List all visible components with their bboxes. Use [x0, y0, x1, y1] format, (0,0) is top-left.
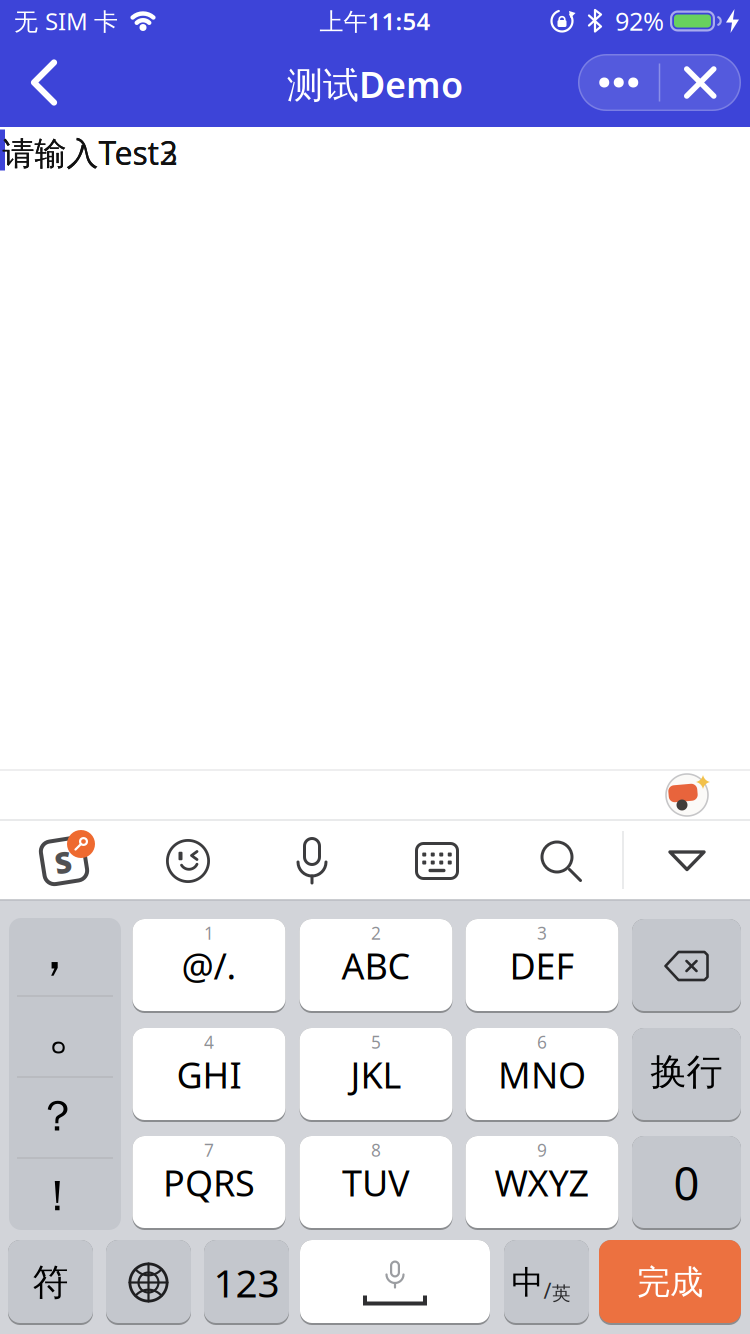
- staticText: 123: [213, 1257, 279, 1308]
- button[interactable]: 7: [132, 1136, 285, 1230]
- button[interactable]: 换行: [632, 1028, 741, 1122]
- button[interactable]: 中: [504, 1240, 589, 1325]
- staticText: 英: [552, 1282, 571, 1305]
- staticText: 2: [371, 921, 381, 944]
- button[interactable]: 6: [465, 1028, 618, 1122]
- staticText: /: [543, 1276, 551, 1305]
- button[interactable]: Sogou: [31, 828, 97, 894]
- staticText: 请输入Test2: [2, 131, 177, 174]
- button[interactable]: 5: [299, 1028, 452, 1122]
- staticText: WXYZ: [494, 1159, 589, 1206]
- staticText: 0: [673, 1153, 699, 1213]
- staticText: 5: [371, 1030, 381, 1053]
- button[interactable]: Delete: [632, 919, 741, 1013]
- staticText: ！: [36, 1170, 79, 1222]
- staticText: ，: [26, 915, 82, 984]
- button[interactable]: Voice input: [294, 836, 330, 884]
- button[interactable]: Search: [540, 840, 581, 881]
- staticText: S: [54, 842, 71, 881]
- staticText: ？: [36, 1090, 79, 1143]
- staticText: JKL: [350, 1051, 401, 1098]
- staticText: 完成: [637, 1262, 703, 1303]
- button[interactable]: Space, voice input: [300, 1240, 490, 1325]
- button[interactable]: Hide keyboard: [657, 841, 717, 881]
- staticText: 8: [371, 1138, 381, 1161]
- staticText: 9: [537, 1138, 547, 1161]
- staticText: 无 SIM 卡: [14, 5, 118, 37]
- staticText: TUV: [342, 1159, 410, 1206]
- staticText: 上午11:54: [319, 5, 430, 37]
- button[interactable]: 0: [632, 1136, 741, 1230]
- staticText: 7: [204, 1138, 214, 1161]
- staticText: @/.: [181, 942, 236, 989]
- button[interactable]: 123: [204, 1240, 289, 1325]
- staticText: ABC: [341, 942, 410, 989]
- button[interactable]: Close: [660, 54, 740, 111]
- button[interactable]: 9: [465, 1136, 618, 1230]
- staticText: 测试Demo: [287, 60, 463, 108]
- staticText: 3: [537, 921, 547, 944]
- staticText: 中: [511, 1263, 543, 1302]
- staticText: 。: [47, 994, 103, 1063]
- button[interactable]: 3: [465, 919, 618, 1013]
- button[interactable]: 1: [132, 919, 285, 1013]
- button[interactable]: 符: [8, 1240, 93, 1325]
- staticText: DEF: [509, 942, 574, 989]
- button[interactable]: Emoji: [166, 839, 210, 883]
- button[interactable]: 4: [132, 1028, 285, 1122]
- staticText: GHI: [176, 1051, 241, 1098]
- staticText: 1: [204, 921, 214, 944]
- staticText: 符: [32, 1260, 68, 1305]
- staticText: MNO: [498, 1051, 586, 1098]
- staticText: 请输入Test3: [2, 131, 177, 174]
- staticText: 92%: [615, 4, 664, 38]
- button[interactable]: Back: [9, 48, 79, 118]
- button[interactable]: 完成: [599, 1240, 741, 1325]
- staticText: 4: [204, 1030, 214, 1053]
- button[interactable]: 8: [299, 1136, 452, 1230]
- button[interactable]: Keyboard layout: [415, 842, 459, 880]
- button[interactable]: Next keyboard: [106, 1240, 191, 1325]
- staticText: PQRS: [163, 1159, 255, 1206]
- staticText: 6: [537, 1030, 547, 1053]
- button[interactable]: ，: [9, 918, 121, 1230]
- staticText: 换行: [650, 1050, 722, 1094]
- button[interactable]: More: [579, 54, 659, 111]
- button[interactable]: 2: [299, 919, 452, 1013]
